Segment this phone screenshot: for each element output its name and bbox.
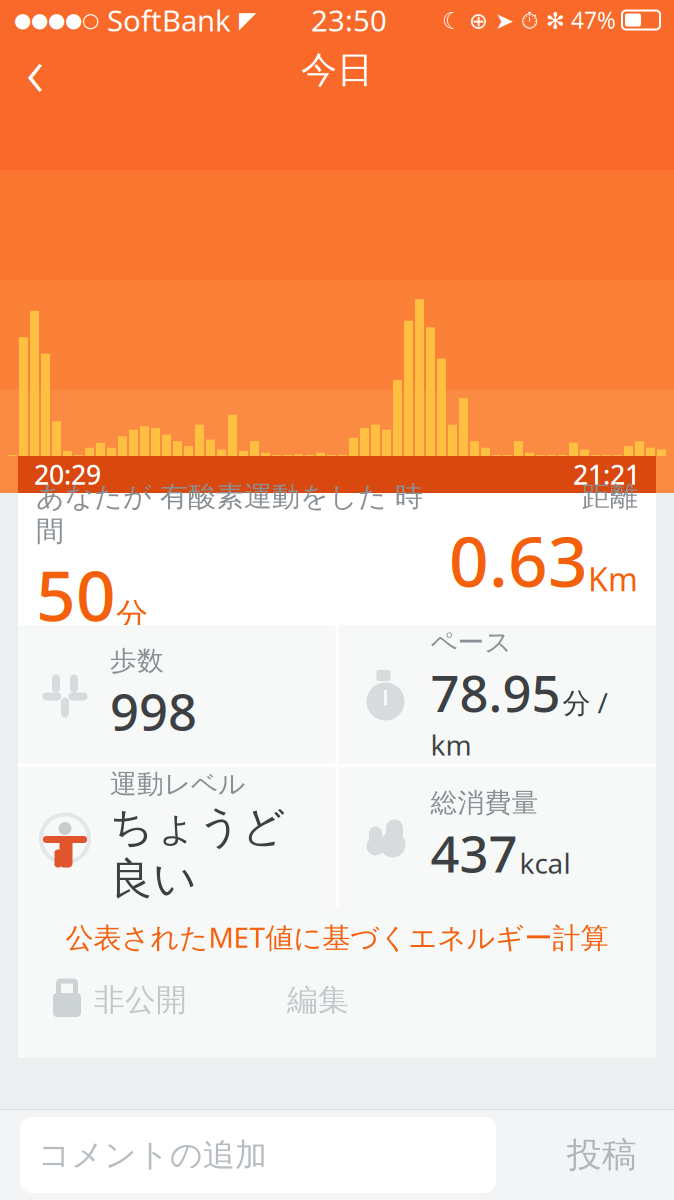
staticText: 歩数 [110, 644, 164, 677]
button[interactable]: 投稿 [542, 1117, 662, 1193]
staticText: 編集 [287, 981, 349, 1019]
staticText: 23:50 [311, 0, 387, 39]
button[interactable]: Back [0, 40, 70, 100]
staticText: km [430, 726, 471, 763]
staticText: 今日 [301, 48, 373, 92]
button[interactable]: 編集 [287, 968, 377, 1032]
staticText: 998 [110, 677, 197, 744]
staticText: SoftBank [99, 0, 239, 39]
button[interactable]: 総消費量 [338, 767, 656, 906]
staticText: 0.63 [449, 514, 588, 606]
staticText: ◤ [239, 7, 256, 33]
staticText: ペース [430, 626, 511, 659]
staticText: 非公開 [94, 981, 187, 1019]
button[interactable]: 運動レベル [18, 767, 335, 906]
staticText: 20:29 [34, 457, 101, 492]
staticText: 公表されたMET値に基づくエネルギー計算 [65, 918, 608, 956]
staticText: ☾ ⊕ ➤ ⏱ ✻ 47% [442, 5, 616, 35]
staticText: 分 [116, 595, 148, 634]
staticText: 総消費量 [430, 786, 538, 819]
staticText: 78.95 [430, 659, 560, 726]
button[interactable]: ペース [338, 625, 656, 764]
staticText: あなたが 有酸素運動をした 時間 [36, 480, 423, 548]
button[interactable]: 公表されたMET値に基づくエネルギー計算 [18, 906, 656, 968]
staticText: 距離 [582, 480, 638, 514]
staticText: 投稿 [567, 1134, 637, 1176]
staticText: 21:21 [573, 457, 640, 492]
staticText: kcal [519, 844, 570, 881]
staticText: ‹ [26, 24, 44, 116]
staticText: 437 [430, 819, 517, 886]
button[interactable]: コメントの追加 [20, 1117, 496, 1193]
staticText: コメントの追加 [38, 1135, 267, 1175]
staticText: ちょうど良い [110, 800, 286, 905]
button[interactable]: 非公開 [18, 968, 187, 1032]
staticText: ●●●●○ [14, 9, 99, 31]
button[interactable]: 歩数 [18, 625, 335, 764]
staticText: Km [588, 557, 638, 600]
staticText: 運動レベル [110, 768, 245, 800]
staticText: 50 [36, 548, 116, 640]
staticText: 分 / [562, 684, 607, 721]
